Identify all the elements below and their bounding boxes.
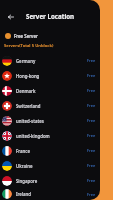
button[interactable]: Germany: [0, 53, 100, 68]
staticText: Servers(Total 5 Unblock): [4, 43, 54, 49]
button[interactable]: Ukraine: [0, 158, 100, 173]
staticText: Free: [87, 58, 96, 63]
staticText: Free Server: [14, 33, 38, 39]
staticText: Ireland: [16, 191, 87, 197]
staticText: Switzerland: [16, 103, 87, 109]
staticText: Free: [87, 148, 96, 153]
button[interactable]: Back: [3, 9, 18, 24]
button[interactable]: united-kingdom: [0, 128, 100, 143]
staticText: Free: [87, 73, 96, 78]
staticText: Singapore: [16, 178, 87, 184]
staticText: Germany: [16, 58, 87, 64]
button[interactable]: Hong-kong: [0, 68, 100, 83]
button[interactable]: Denmark: [0, 83, 100, 98]
staticText: Free: [87, 178, 96, 183]
button[interactable]: Switzerland: [0, 98, 100, 113]
staticText: Hong-kong: [16, 73, 87, 79]
staticText: united-states: [16, 118, 87, 124]
staticText: Server Location: [26, 12, 75, 20]
button[interactable]: Singapore: [0, 173, 100, 188]
button[interactable]: united-states: [0, 113, 100, 128]
staticText: Ukraine: [16, 163, 87, 169]
staticText: Free: [87, 88, 96, 93]
staticText: France: [16, 148, 87, 154]
staticText: Denmark: [16, 88, 87, 94]
staticText: Free: [87, 163, 96, 168]
staticText: Free: [87, 133, 96, 138]
button[interactable]: France: [0, 143, 100, 158]
button[interactable]: Free Server: [0, 30, 100, 41]
button[interactable]: Ireland: [0, 188, 100, 200]
staticText: Free: [87, 192, 96, 197]
staticText: united-kingdom: [16, 133, 87, 139]
staticText: Free: [87, 118, 96, 123]
staticText: Free: [87, 103, 96, 108]
